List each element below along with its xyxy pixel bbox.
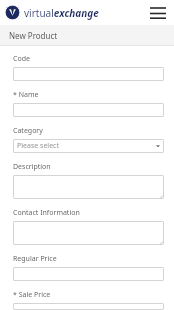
- button[interactable]: [13, 221, 164, 245]
- button[interactable]: [13, 103, 164, 117]
- staticText: Regular Price: [13, 254, 57, 264]
- staticText: Contact Information: [13, 208, 80, 218]
- button[interactable]: [13, 303, 164, 310]
- staticText: Please select: [17, 141, 59, 151]
- button[interactable]: Please select: [13, 139, 164, 153]
- staticText: Category: [13, 126, 43, 136]
- button[interactable]: Menu: [149, 4, 167, 22]
- staticText: * Sale Price: [13, 290, 51, 300]
- button[interactable]: [13, 175, 164, 199]
- staticText: * Name: [13, 90, 39, 100]
- button[interactable]: [13, 267, 164, 281]
- staticText: Code: [13, 54, 30, 64]
- staticText: New Product: [9, 30, 58, 41]
- staticText: Description: [13, 162, 51, 172]
- button[interactable]: virtualexchange: [4, 4, 99, 21]
- button[interactable]: [13, 67, 164, 81]
- staticText: virtualexchange: [24, 6, 99, 20]
